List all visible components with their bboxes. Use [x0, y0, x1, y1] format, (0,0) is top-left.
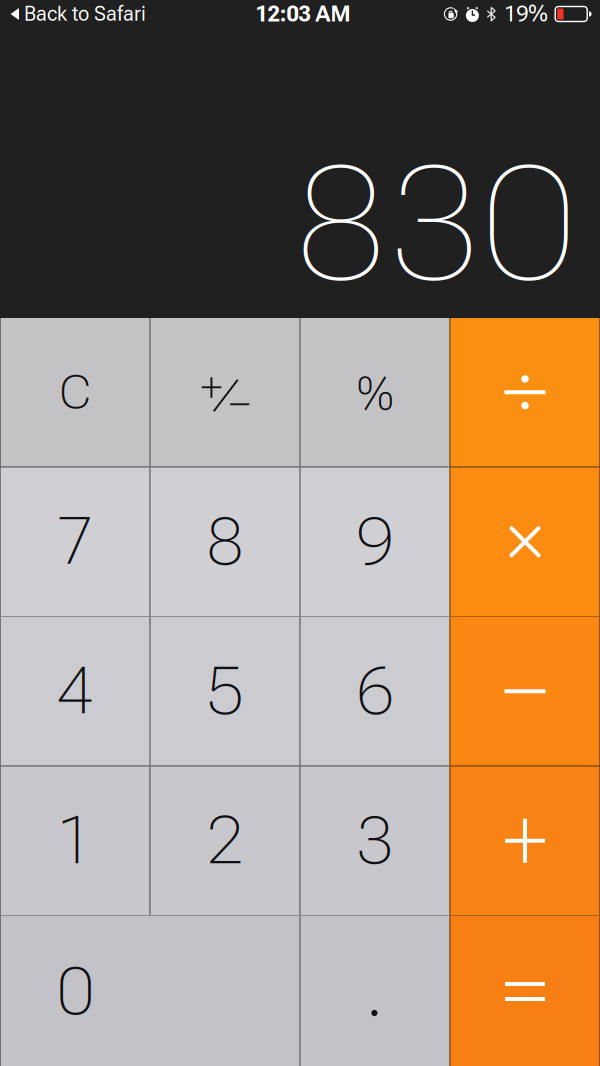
button[interactable]: Clear — [0, 318, 149, 466]
button[interactable]: 1 — [0, 766, 149, 915]
button[interactable]: 5 — [150, 617, 299, 765]
button[interactable]: 3 — [300, 766, 449, 915]
button[interactable]: 7 — [0, 467, 149, 616]
button[interactable]: 9 — [300, 467, 449, 616]
staticText: 19% — [504, 1, 548, 27]
staticText: 0 — [57, 953, 94, 1030]
button[interactable]: Multiply — [450, 467, 599, 616]
button[interactable]: Divide — [450, 318, 599, 466]
button[interactable]: Plus minus — [150, 318, 299, 466]
button[interactable]: 6 — [300, 617, 449, 765]
staticText: 7 — [56, 503, 93, 580]
staticText: 5 — [206, 653, 243, 730]
button[interactable]: Minus — [450, 617, 599, 765]
staticText: 6 — [356, 653, 393, 730]
button[interactable]: Percent — [300, 318, 449, 466]
button[interactable]: 4 — [0, 617, 149, 765]
staticText: 3 — [356, 802, 393, 879]
staticText: 8 — [206, 503, 243, 580]
staticText: 9 — [356, 503, 393, 580]
button[interactable]: Back to Safari — [0, 0, 146, 29]
staticText: Back to Safari — [24, 2, 146, 26]
button[interactable]: 8 — [150, 467, 299, 616]
button[interactable]: Equals — [450, 916, 599, 1066]
staticText: 12:03 AM — [255, 1, 350, 27]
button[interactable]: 0 — [0, 916, 299, 1066]
staticText: % — [357, 368, 393, 421]
staticText: 2 — [206, 802, 243, 879]
staticText: 830 — [294, 131, 576, 317]
button[interactable]: Plus — [450, 766, 599, 915]
button[interactable]: 2 — [150, 766, 299, 915]
staticText: 4 — [56, 653, 93, 730]
button[interactable]: Decimal point — [300, 916, 449, 1066]
staticText: C — [59, 365, 90, 420]
staticText: 1 — [56, 802, 93, 879]
